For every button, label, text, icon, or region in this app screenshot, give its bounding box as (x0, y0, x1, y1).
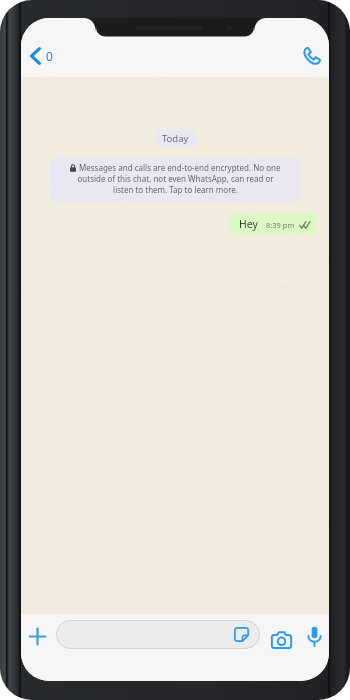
staticText: listen to them. Tap to learn more. (113, 184, 238, 195)
staticText: outside of this chat, not even WhatsApp,… (77, 173, 274, 184)
staticText: Today (162, 132, 189, 145)
staticText: 8:39 pm (266, 220, 295, 230)
staticText: Messages and calls are end-to-end encryp… (79, 162, 281, 173)
other: Sticker (234, 627, 249, 642)
button[interactable]: Camera (266, 626, 297, 654)
staticText: Hey (239, 217, 258, 231)
button[interactable]: Attach (23, 622, 52, 651)
button[interactable]: Back (24, 41, 61, 71)
button[interactable]: Call (297, 41, 327, 71)
button[interactable]: Voice message (302, 622, 327, 651)
button[interactable]: Sticker (56, 620, 260, 649)
staticText: 0 (46, 48, 53, 64)
button[interactable]: Messages and calls are end-to-end encryp… (50, 158, 300, 202)
button[interactable]: Hey (230, 213, 317, 235)
